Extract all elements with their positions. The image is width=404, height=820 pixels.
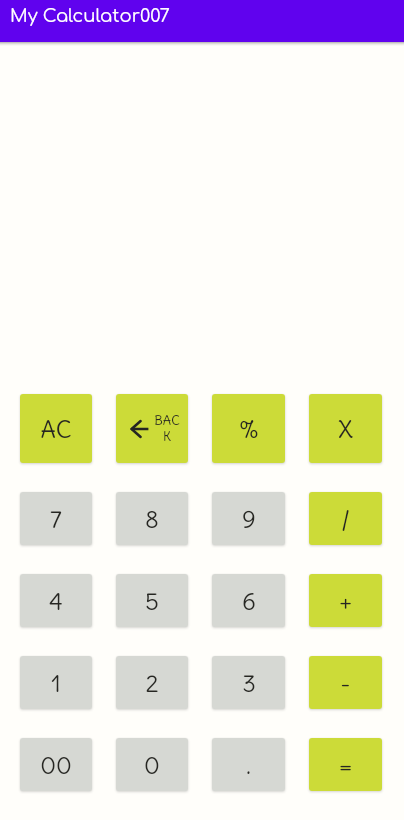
staticText: - [340,668,351,698]
staticText: 0 [144,750,160,780]
staticText: 1 [51,668,61,698]
staticText: BACK [154,412,180,445]
staticText: 9 [242,504,256,534]
staticText: 00 [40,750,72,780]
button[interactable]: 2 [116,656,188,709]
staticText: 7 [50,504,62,534]
button[interactable]: / [309,492,382,545]
button[interactable]: 6 [212,574,285,627]
staticText: 6 [242,586,256,616]
button[interactable]: AC [20,394,92,463]
button[interactable]: 0 [116,738,188,791]
button[interactable]: 8 [116,492,188,545]
staticText: 2 [145,668,159,698]
staticText: . [246,750,251,780]
button[interactable]: 00 [20,738,92,791]
button[interactable]: X [309,394,382,463]
button[interactable]: + [309,574,382,627]
staticText: 8 [145,504,159,534]
button[interactable]: Back [116,394,188,463]
staticText: % [239,414,259,444]
button[interactable]: 1 [20,656,92,709]
staticText: + [339,586,352,616]
staticText: My Calculator007 [10,6,170,26]
button[interactable]: 9 [212,492,285,545]
staticText: 3 [242,668,256,698]
staticText: / [341,504,350,534]
staticText: 5 [145,586,159,616]
button[interactable]: % [212,394,285,463]
staticText: AC [40,414,72,444]
button[interactable]: 4 [20,574,92,627]
button[interactable]: 3 [212,656,285,709]
button[interactable]: 7 [20,492,92,545]
button[interactable]: = [309,738,382,791]
staticText: 4 [49,586,63,616]
staticText: = [338,750,353,780]
staticText: X [338,414,353,444]
button[interactable]: - [309,656,382,709]
button[interactable]: . [212,738,285,791]
button[interactable]: 5 [116,574,188,627]
